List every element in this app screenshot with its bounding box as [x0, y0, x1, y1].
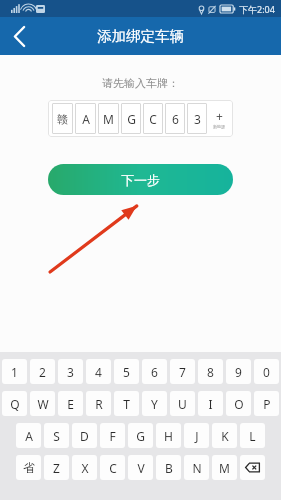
staticText: 请先输入车牌：	[102, 76, 179, 90]
button[interactable]: 省	[16, 455, 41, 480]
button[interactable]: C	[143, 103, 163, 134]
staticText: K	[221, 428, 229, 444]
staticText: 4	[95, 364, 102, 380]
button[interactable]: 下一步	[48, 164, 233, 195]
button[interactable]: N	[184, 455, 209, 480]
staticText: A	[82, 111, 90, 127]
button[interactable]: Backspace	[240, 455, 265, 480]
staticText: 6	[151, 364, 158, 380]
staticText: 8	[207, 364, 214, 380]
button[interactable]: O	[226, 391, 251, 416]
staticText: Y	[151, 396, 158, 412]
staticText: 下午2:04	[239, 3, 275, 15]
button[interactable]: T	[114, 391, 139, 416]
button[interactable]: F	[100, 423, 125, 448]
button[interactable]: B	[156, 455, 181, 480]
staticText: E	[67, 396, 74, 412]
button[interactable]: I	[198, 391, 223, 416]
staticText: Z	[53, 460, 60, 476]
button[interactable]: Y	[142, 391, 167, 416]
button[interactable]: V	[128, 455, 153, 480]
staticText: C	[109, 460, 117, 476]
staticText: G	[127, 111, 136, 127]
button[interactable]: M	[98, 103, 119, 134]
button[interactable]: E	[58, 391, 83, 416]
button[interactable]: 新能源	[209, 103, 229, 134]
button[interactable]: 4	[86, 359, 111, 384]
staticText: 省	[23, 460, 35, 475]
staticText: M	[219, 460, 230, 476]
staticText: H	[164, 428, 173, 444]
button[interactable]: 3	[187, 103, 207, 134]
button[interactable]: P	[254, 391, 279, 416]
button[interactable]: 3	[58, 359, 83, 384]
button[interactable]: 9	[226, 359, 251, 384]
staticText: 赣	[57, 112, 68, 126]
staticText: V	[137, 460, 145, 476]
staticText: S	[53, 428, 60, 444]
button[interactable]: 2	[30, 359, 55, 384]
staticText: P	[263, 396, 271, 412]
staticText: 3	[67, 364, 74, 380]
staticText: W	[37, 396, 49, 412]
button[interactable]: X	[72, 455, 97, 480]
button[interactable]: 1	[2, 359, 27, 384]
staticText: 5	[123, 364, 130, 380]
button[interactable]: D	[72, 423, 97, 448]
button[interactable]: 6	[165, 103, 185, 134]
button[interactable]: 赣	[52, 103, 73, 134]
staticText: U	[178, 396, 187, 412]
button[interactable]: 7	[170, 359, 195, 384]
staticText: 1	[11, 364, 18, 380]
staticText: 添加绑定车辆	[97, 27, 184, 45]
staticText: 2	[39, 364, 46, 380]
staticText: L	[249, 428, 256, 444]
button[interactable]: C	[100, 455, 125, 480]
button[interactable]: K	[212, 423, 237, 448]
button[interactable]: G	[121, 103, 141, 134]
staticText: F	[109, 428, 116, 444]
button[interactable]: H	[156, 423, 181, 448]
button[interactable]: Q	[2, 391, 27, 416]
staticText: M	[103, 111, 114, 127]
staticText: I	[208, 396, 213, 412]
staticText: C	[149, 111, 157, 127]
button[interactable]: J	[184, 423, 209, 448]
button[interactable]: S	[44, 423, 69, 448]
button[interactable]: U	[170, 391, 195, 416]
staticText: 6	[172, 111, 179, 127]
staticText: 0	[263, 364, 270, 380]
staticText: 9	[235, 364, 242, 380]
staticText: A	[25, 428, 33, 444]
staticText: T	[123, 396, 130, 412]
button[interactable]: R	[86, 391, 111, 416]
staticText: 7	[179, 364, 186, 380]
button[interactable]: M	[212, 455, 237, 480]
staticText: 3	[194, 111, 201, 127]
staticText: D	[80, 428, 89, 444]
button[interactable]: G	[128, 423, 153, 448]
staticText: O	[234, 396, 244, 412]
button[interactable]: A	[16, 423, 41, 448]
staticText: X	[81, 460, 89, 476]
staticText: G	[136, 428, 145, 444]
button[interactable]: A	[75, 103, 96, 134]
button[interactable]: L	[240, 423, 265, 448]
button[interactable]: Z	[44, 455, 69, 480]
button[interactable]: 6	[142, 359, 167, 384]
staticText: Q	[10, 396, 20, 412]
staticText: J	[195, 428, 199, 444]
staticText: R	[95, 396, 103, 412]
staticText: 下一步	[121, 172, 160, 188]
button[interactable]: 5	[114, 359, 139, 384]
button[interactable]: 8	[198, 359, 223, 384]
staticText: 新能源	[213, 124, 225, 129]
staticText: +	[216, 108, 223, 124]
button[interactable]: Back	[0, 17, 38, 55]
button[interactable]: 0	[254, 359, 279, 384]
staticText: N	[192, 460, 202, 476]
button[interactable]: W	[30, 391, 55, 416]
staticText: B	[165, 460, 173, 476]
